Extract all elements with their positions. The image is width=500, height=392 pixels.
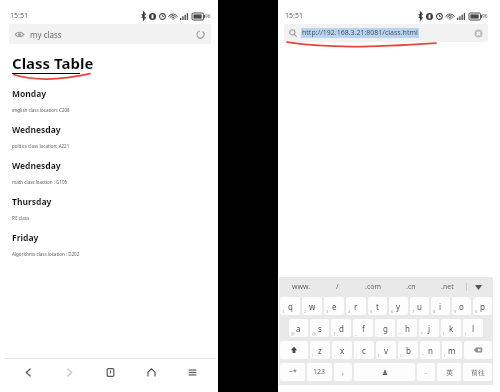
staticText: e <box>332 301 337 312</box>
button[interactable]: ~* <box>280 363 305 381</box>
staticText: 1 <box>282 309 285 314</box>
staticText: math class loaction : G105 <box>12 179 68 185</box>
staticText: Wednesday <box>12 160 61 172</box>
button[interactable]: y <box>389 297 408 315</box>
staticText: , <box>342 367 344 377</box>
button[interactable]: v <box>376 341 396 359</box>
button[interactable]: i <box>431 297 450 315</box>
staticText: Class Table <box>12 53 94 73</box>
button[interactable]: .cn <box>392 279 429 295</box>
other: Clear <box>474 29 483 38</box>
staticText: ~* <box>289 367 297 377</box>
staticText: 15:51 <box>285 11 303 21</box>
staticText: 15:51 <box>10 11 28 21</box>
button[interactable]: Back <box>11 359 45 385</box>
staticText: k <box>449 323 454 334</box>
staticText: : <box>334 353 336 358</box>
staticText: 0 <box>475 309 478 314</box>
staticText: u <box>417 301 422 312</box>
button[interactable]: Forward <box>52 359 86 385</box>
button[interactable]: Menu <box>175 359 209 385</box>
button[interactable]: www. <box>283 279 319 295</box>
staticText: s <box>318 323 322 334</box>
staticText: / <box>336 282 339 292</box>
staticText: http://192.168.3.21:8081/class.html <box>302 28 418 38</box>
button[interactable]: d <box>331 319 351 337</box>
staticText: o <box>459 301 464 312</box>
staticText: ↑ <box>333 331 337 336</box>
button[interactable]: p <box>473 297 492 315</box>
staticText: Friday <box>12 232 39 244</box>
staticText: my class <box>30 29 62 40</box>
button[interactable]: Backspace <box>464 341 492 359</box>
button[interactable]: Home <box>134 359 168 385</box>
staticText: v <box>384 345 389 356</box>
staticText: g <box>383 323 388 334</box>
button[interactable]: x <box>332 341 352 359</box>
button[interactable]: Shift <box>280 341 308 359</box>
button[interactable]: o <box>452 297 471 315</box>
staticText: y <box>396 301 401 312</box>
button[interactable]: .net <box>429 279 466 295</box>
staticText: Monday <box>12 88 47 100</box>
staticText: _ <box>355 331 357 336</box>
button[interactable]: 前往 <box>463 363 492 381</box>
button[interactable]: t <box>368 297 387 315</box>
staticText: j <box>428 323 431 334</box>
staticText: ( <box>443 331 445 336</box>
staticText: ! <box>312 353 314 358</box>
button[interactable]: http://192.168.3.21:8081/class.html <box>284 24 488 42</box>
staticText: 3 <box>326 309 329 314</box>
button[interactable]: b <box>398 341 418 359</box>
button[interactable]: More <box>467 279 489 295</box>
button[interactable]: c <box>354 341 374 359</box>
staticText: ? <box>421 331 423 336</box>
button[interactable]: h <box>397 319 417 337</box>
button[interactable]: u <box>410 297 429 315</box>
button[interactable]: 123 <box>307 363 332 381</box>
staticText: 6 <box>391 309 394 314</box>
staticText: l <box>472 323 475 334</box>
button[interactable]: l <box>463 319 483 337</box>
staticText: i <box>439 301 442 312</box>
staticText: P.E class <box>12 215 30 221</box>
button[interactable]: j <box>419 319 439 337</box>
button[interactable]: g <box>375 319 395 337</box>
button[interactable]: n <box>420 341 440 359</box>
staticText: 9 <box>454 309 457 314</box>
staticText: f <box>362 323 365 334</box>
button[interactable]: s <box>310 319 329 337</box>
staticText: 96 <box>205 13 211 20</box>
staticText: english class location: C208 <box>12 107 70 113</box>
staticText: @ <box>312 331 316 336</box>
staticText: .cn <box>406 282 416 292</box>
button[interactable]: my class <box>9 24 211 44</box>
staticText: p <box>480 301 485 312</box>
staticText: r <box>354 301 358 312</box>
staticText: n <box>428 345 433 356</box>
staticText: q <box>288 301 293 312</box>
button[interactable]: f <box>353 319 373 337</box>
staticText: d <box>339 323 344 334</box>
button[interactable]: z <box>310 341 330 359</box>
staticText: @ <box>291 331 295 336</box>
staticText: z <box>318 345 322 356</box>
button[interactable]: q <box>280 297 300 315</box>
button[interactable]: , <box>334 363 352 381</box>
staticText: 4 <box>348 309 351 314</box>
button[interactable]: / <box>319 279 355 295</box>
button[interactable]: m <box>442 341 462 359</box>
staticText: 5 <box>370 309 373 314</box>
button[interactable]: r <box>346 297 366 315</box>
button[interactable]: e <box>324 297 344 315</box>
button[interactable]: 英 <box>437 363 461 381</box>
button[interactable]: Space <box>354 363 415 381</box>
button[interactable]: Tabs <box>93 359 127 385</box>
other: Reload <box>196 30 205 39</box>
button[interactable]: .com <box>355 279 392 295</box>
staticText: 前往 <box>471 368 485 377</box>
button[interactable]: a <box>289 319 308 337</box>
button[interactable]: w <box>302 297 322 315</box>
button[interactable]: k <box>441 319 461 337</box>
button[interactable]: . <box>417 363 435 381</box>
